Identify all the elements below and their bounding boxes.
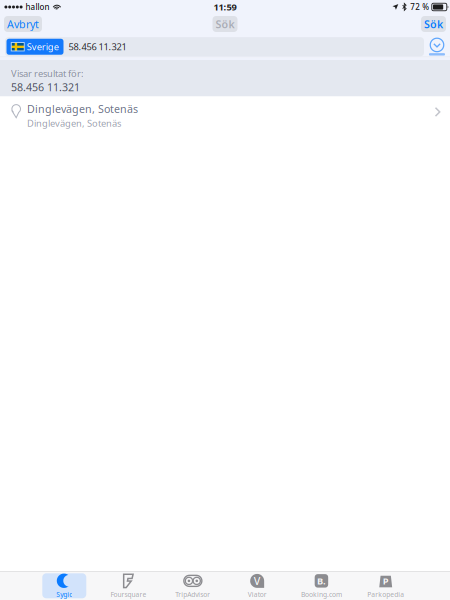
staticText: Dinglevägen, Sotenäs [27,117,121,129]
staticText: Viator [248,590,267,599]
button[interactable]: TripAdvisor [161,573,225,598]
staticText: 72 % [410,2,429,12]
button[interactable]: V [225,573,289,598]
button[interactable]: Dinglevägen, Sotenäs [0,96,450,130]
staticText: hallon [25,2,49,12]
button[interactable]: Foursquare [96,573,161,598]
staticText: Foursquare [111,590,147,599]
staticText: Sverige [27,41,59,53]
staticText: Visar resultat för: [11,67,84,80]
staticText: P [383,575,389,587]
staticText: Dinglevägen, Sotenäs [27,102,138,116]
button[interactable]: Sverige [6,39,63,55]
staticText: Booking.com [301,590,342,599]
staticText: B. [317,575,326,587]
staticText: Avbryt [7,17,39,31]
staticText: 11:59 [213,1,236,13]
staticText: 58.456 11.321 [68,41,126,53]
staticText: 58.456 11.321 [11,80,80,94]
staticText: TripAdvisor [175,590,210,599]
staticText: Sök [424,17,443,31]
staticText: Parkopedia [367,590,404,599]
button[interactable]: B. [289,573,354,598]
button[interactable]: Sygic [32,573,96,598]
staticText: V [254,574,261,588]
button[interactable]: Sök [421,16,446,32]
staticText: Sygic [56,590,72,599]
button[interactable]: P [354,573,418,598]
staticText: Sök [215,17,234,31]
button[interactable]: Show search options [428,37,446,56]
button[interactable]: Avbryt [4,16,42,32]
